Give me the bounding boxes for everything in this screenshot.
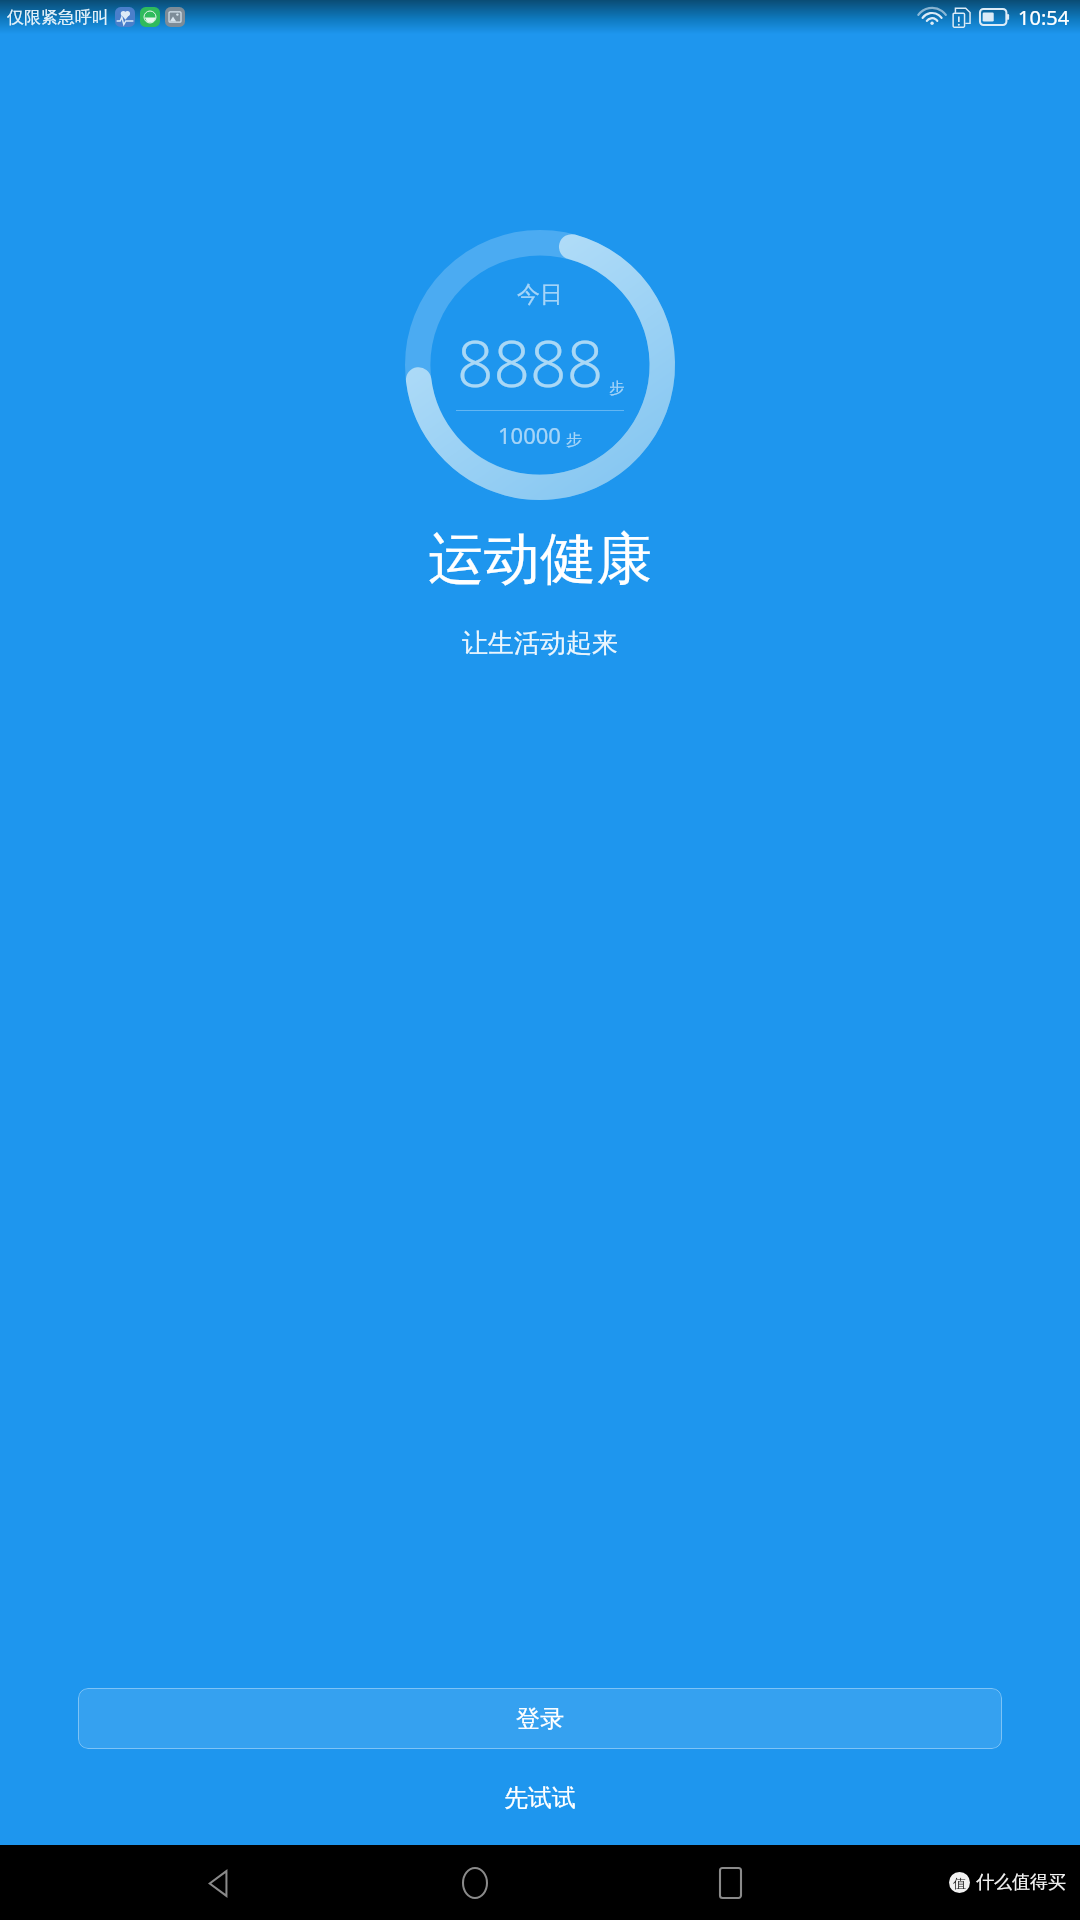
staticText: 步 [566, 430, 582, 450]
staticText: 登录 [516, 1704, 564, 1734]
staticText: 让生活动起来 [462, 627, 618, 660]
staticText: 值 [953, 1875, 966, 1891]
staticText: 运动健康 [428, 524, 652, 595]
staticText: 什么值得买 [976, 1871, 1066, 1894]
staticText: 今日 [517, 280, 563, 309]
staticText: 10:54 [1018, 4, 1070, 31]
button[interactable]: Back [184, 1847, 256, 1919]
staticText: 先试试 [504, 1783, 576, 1813]
button[interactable]: 登录 [78, 1688, 1002, 1749]
button[interactable]: Recent apps [694, 1847, 766, 1919]
button[interactable]: 先试试 [440, 1771, 640, 1825]
staticText: 仅限紧急呼叫 [7, 7, 109, 28]
button[interactable]: Home [439, 1847, 511, 1919]
staticText: 10000 [498, 420, 561, 450]
staticText: 8888 [457, 319, 604, 406]
staticText: 步 [609, 379, 624, 398]
